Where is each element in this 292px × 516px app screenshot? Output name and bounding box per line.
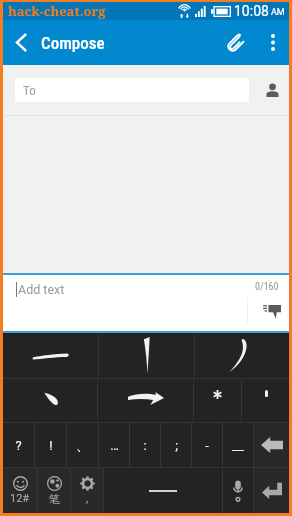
button[interactable]: __ xyxy=(223,423,253,467)
button[interactable]: More options xyxy=(257,20,289,65)
button[interactable]: Wildcard xyxy=(194,379,241,422)
button[interactable]: Space xyxy=(104,468,222,513)
button[interactable]: Vertical stroke xyxy=(99,333,194,378)
button[interactable]: Pick contact xyxy=(262,78,283,102)
button[interactable]: Left falling stroke xyxy=(195,333,289,378)
button[interactable]: … xyxy=(99,423,129,467)
staticText: AM xyxy=(271,7,285,18)
button[interactable]: 、 xyxy=(67,423,98,467)
button[interactable]: Dot stroke xyxy=(3,379,97,422)
staticText: 、 xyxy=(76,437,89,453)
staticText: hack-cheat.org xyxy=(8,2,106,20)
button[interactable]: ! xyxy=(35,423,66,467)
staticText: 0/160 xyxy=(255,281,279,293)
button[interactable]: Turning stroke xyxy=(98,379,193,422)
button[interactable]: - xyxy=(192,423,222,467)
staticText: 10:08 xyxy=(234,3,269,19)
button[interactable]: Back xyxy=(3,20,39,65)
staticText: To xyxy=(23,83,36,98)
button[interactable]: Input method xyxy=(38,468,70,513)
staticText: Compose xyxy=(41,33,105,53)
staticText: Add text xyxy=(18,282,65,297)
button[interactable]: Send message xyxy=(255,299,287,323)
button[interactable]: Enter xyxy=(254,468,289,513)
button[interactable]: : xyxy=(130,423,160,467)
staticText: : xyxy=(143,438,147,453)
staticText: … xyxy=(110,438,119,453)
staticText: - xyxy=(205,438,209,453)
button[interactable]: Backspace xyxy=(254,423,289,467)
staticText: 笔 xyxy=(49,492,60,506)
staticText: , xyxy=(86,492,89,505)
button[interactable]: To xyxy=(15,78,249,102)
button[interactable]: Horizontal stroke xyxy=(3,333,98,378)
button[interactable]: Symbols xyxy=(3,468,37,513)
staticText: __ xyxy=(232,438,244,453)
button[interactable]: ; xyxy=(161,423,191,467)
button[interactable]: Voice input xyxy=(223,468,253,513)
button[interactable]: ? xyxy=(3,423,34,467)
staticText: ! xyxy=(49,438,53,453)
staticText: 12# xyxy=(10,492,30,505)
button[interactable]: Settings xyxy=(71,468,103,513)
button[interactable]: Apostrophe xyxy=(242,379,289,422)
staticText: ? xyxy=(15,438,22,453)
button[interactable]: Attach file xyxy=(215,20,257,65)
staticText: ; xyxy=(175,438,178,453)
